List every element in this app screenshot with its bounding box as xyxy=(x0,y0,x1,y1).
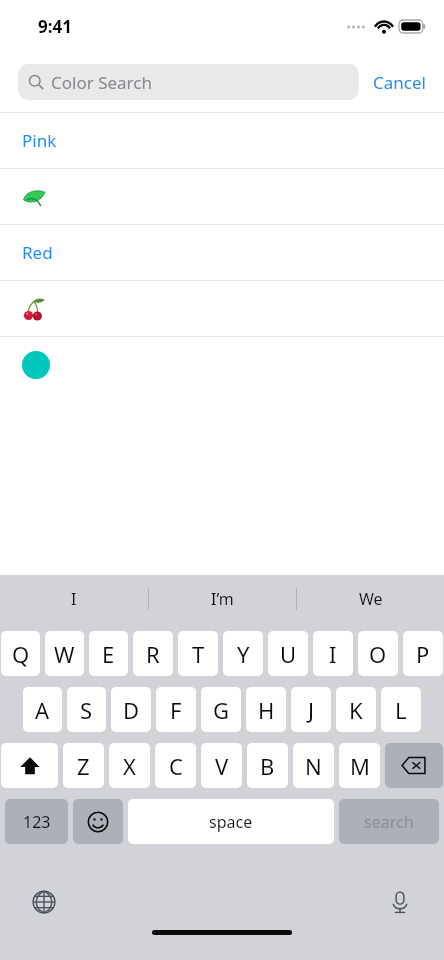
staticText: Y xyxy=(237,639,250,669)
button[interactable]: Dictation xyxy=(382,884,418,920)
staticText: Z xyxy=(77,751,90,781)
button[interactable]: H xyxy=(246,687,286,732)
staticText: M xyxy=(350,751,370,781)
staticText: 9:41 xyxy=(38,15,72,38)
button[interactable]: L xyxy=(381,687,421,732)
button[interactable]: M xyxy=(339,743,380,788)
staticText: U xyxy=(280,639,297,669)
button[interactable]: F xyxy=(156,687,196,732)
staticText: R xyxy=(146,639,160,669)
staticText: H xyxy=(258,695,275,725)
staticText: C xyxy=(169,751,183,781)
button[interactable]: Y xyxy=(223,631,263,676)
staticText: I xyxy=(329,639,337,669)
staticText: space xyxy=(209,811,253,833)
staticText: Q xyxy=(12,639,30,669)
button[interactable]: D xyxy=(111,687,151,732)
button[interactable]: space xyxy=(128,799,334,844)
button[interactable]: Cancel xyxy=(359,65,426,100)
button[interactable]: Emoji xyxy=(73,799,123,844)
button[interactable] xyxy=(0,281,444,336)
staticText: O xyxy=(369,639,387,669)
button[interactable]: Pink xyxy=(0,113,444,168)
staticText: Color Search xyxy=(51,71,152,94)
staticText: P xyxy=(416,639,430,669)
staticText: Red xyxy=(22,241,53,264)
button[interactable]: N xyxy=(293,743,334,788)
button[interactable]: O xyxy=(358,631,398,676)
staticText: J xyxy=(308,695,315,725)
staticText: We xyxy=(359,588,383,610)
staticText: V xyxy=(215,751,229,781)
button[interactable]: We xyxy=(297,575,444,623)
button[interactable]: S xyxy=(67,687,106,732)
button[interactable]: Shift xyxy=(1,743,58,788)
staticText: search xyxy=(364,811,414,833)
button[interactable]: G xyxy=(201,687,241,732)
staticText: A xyxy=(35,695,50,725)
button[interactable]: R xyxy=(133,631,173,676)
button[interactable]: search xyxy=(339,799,439,844)
button[interactable] xyxy=(0,169,444,224)
button[interactable]: Z xyxy=(63,743,104,788)
staticText: L xyxy=(395,695,407,725)
staticText: D xyxy=(123,695,140,725)
staticText: K xyxy=(349,695,363,725)
staticText: S xyxy=(80,695,93,725)
button[interactable]: I’m xyxy=(149,575,296,623)
button[interactable]: E xyxy=(89,631,128,676)
button[interactable]: K xyxy=(336,687,376,732)
button[interactable] xyxy=(0,337,444,392)
staticText: N xyxy=(305,751,322,781)
button[interactable]: I xyxy=(0,575,148,623)
button[interactable]: 123 xyxy=(5,799,68,844)
button[interactable]: B xyxy=(247,743,288,788)
staticText: B xyxy=(260,751,275,781)
staticText: F xyxy=(170,695,182,725)
button[interactable]: J xyxy=(291,687,331,732)
button[interactable]: Red xyxy=(0,225,444,280)
staticText: T xyxy=(192,639,205,669)
button[interactable]: V xyxy=(201,743,242,788)
staticText: I xyxy=(71,588,77,610)
button[interactable]: A xyxy=(23,687,62,732)
button[interactable]: P xyxy=(403,631,443,676)
button[interactable]: Color Search xyxy=(18,64,359,100)
staticText: W xyxy=(54,639,75,669)
staticText: Pink xyxy=(22,129,57,152)
staticText: G xyxy=(213,695,230,725)
button[interactable]: I xyxy=(313,631,353,676)
button[interactable]: X xyxy=(109,743,150,788)
button[interactable]: Q xyxy=(1,631,40,676)
staticText: Cancel xyxy=(373,71,426,94)
staticText: I’m xyxy=(211,588,234,610)
staticText: X xyxy=(123,751,136,781)
button[interactable]: U xyxy=(268,631,308,676)
button[interactable]: Change keyboard xyxy=(26,884,62,920)
button[interactable]: T xyxy=(178,631,218,676)
button[interactable]: W xyxy=(45,631,84,676)
staticText: 123 xyxy=(23,811,51,833)
button[interactable]: C xyxy=(155,743,196,788)
staticText: E xyxy=(102,639,115,669)
button[interactable]: Backspace xyxy=(385,743,443,788)
